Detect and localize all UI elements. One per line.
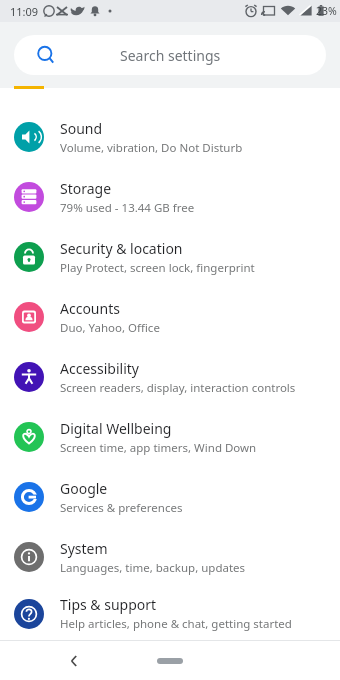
staticText: Help articles, phone & chat, getting sta… bbox=[60, 616, 292, 632]
button[interactable]: Home bbox=[147, 651, 193, 671]
staticText: Google bbox=[60, 479, 108, 498]
staticText: Play Protect, screen lock, fingerprint bbox=[60, 260, 255, 276]
staticText: Security & location bbox=[60, 239, 183, 258]
staticText: Languages, time, backup, updates bbox=[60, 560, 246, 576]
staticText: Sound bbox=[60, 119, 103, 138]
staticText: Duo, Yahoo, Office bbox=[60, 320, 160, 336]
staticText: Tips & support bbox=[60, 595, 157, 614]
button[interactable]: Digital Wellbeing bbox=[0, 407, 340, 467]
button[interactable]: Search bbox=[14, 35, 326, 75]
staticText: Screen readers, display, interaction con… bbox=[60, 380, 296, 396]
staticText: 11:09 bbox=[10, 4, 39, 19]
button[interactable]: Accounts bbox=[0, 287, 340, 347]
button[interactable]: Back bbox=[58, 645, 90, 677]
button[interactable]: Google bbox=[0, 467, 340, 527]
staticText: Storage bbox=[60, 179, 112, 198]
staticText: 23% bbox=[316, 4, 337, 18]
button[interactable]: Tips & support bbox=[0, 587, 340, 640]
button[interactable]: Sound bbox=[0, 107, 340, 167]
staticText: Screen time, app timers, Wind Down bbox=[60, 440, 257, 456]
button[interactable]: Storage bbox=[0, 167, 340, 227]
staticText: Search settings bbox=[120, 46, 221, 65]
button[interactable]: Security & location bbox=[0, 227, 340, 287]
button[interactable]: Accessibility bbox=[0, 347, 340, 407]
staticText: Accounts bbox=[60, 299, 120, 318]
staticText: 79% used - 13.44 GB free bbox=[60, 200, 195, 216]
staticText: Digital Wellbeing bbox=[60, 419, 172, 438]
staticText: Accessibility bbox=[60, 359, 139, 378]
staticText: System bbox=[60, 539, 108, 558]
staticText: Volume, vibration, Do Not Disturb bbox=[60, 140, 243, 156]
button[interactable]: System bbox=[0, 527, 340, 587]
staticText: Services & preferences bbox=[60, 500, 183, 516]
other: Search bbox=[36, 45, 56, 65]
